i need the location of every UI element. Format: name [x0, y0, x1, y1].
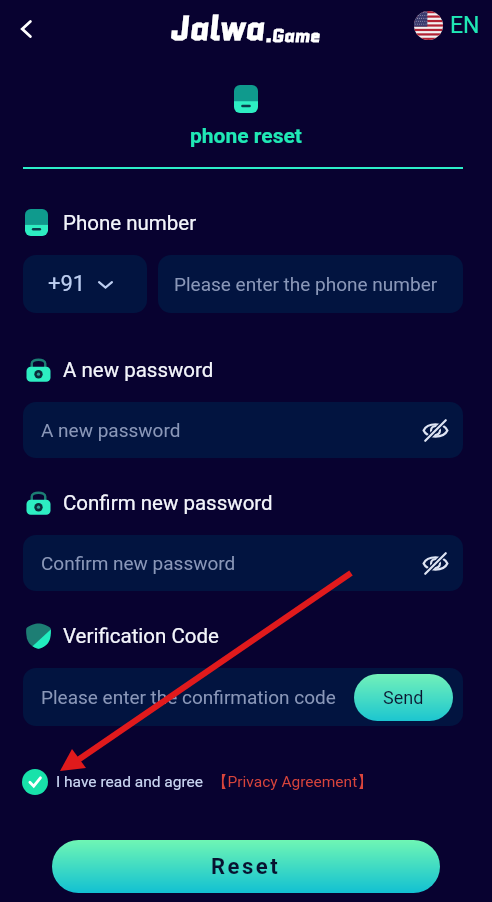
staticText: A new password — [41, 419, 181, 441]
button[interactable]: +91 — [23, 255, 147, 313]
staticText: Please enter the phone number — [174, 273, 438, 295]
staticText: Please enter the confirmation code — [41, 686, 336, 708]
staticText: EN — [450, 12, 480, 39]
staticText: Confirm new password — [63, 491, 273, 515]
staticText: Send — [383, 687, 424, 708]
staticText: Jalwa — [171, 5, 265, 52]
button[interactable]: A new password — [23, 402, 463, 458]
staticText: Phone number — [63, 211, 197, 235]
button[interactable]: Please enter the phone number — [158, 255, 463, 313]
button[interactable]: Toggle password visibility — [417, 412, 453, 448]
button[interactable]: Agree to privacy agreement — [22, 769, 48, 795]
button[interactable]: Back — [6, 9, 46, 49]
staticText: phone reset — [190, 124, 302, 149]
staticText: Reset — [211, 854, 281, 880]
button[interactable]: Please enter the confirmation code — [23, 668, 463, 726]
staticText: Confirm new password — [41, 552, 236, 574]
button[interactable]: Confirm new password — [23, 535, 463, 591]
staticText: Verification Code — [63, 624, 219, 648]
staticText: .Game — [265, 23, 321, 49]
staticText: A new password — [63, 358, 214, 382]
button[interactable]: 【Privacy Agreement】 — [212, 772, 373, 792]
button[interactable]: EN — [414, 11, 480, 40]
button[interactable]: Reset — [52, 840, 440, 893]
staticText: +91 — [48, 271, 86, 297]
button[interactable]: Toggle password visibility — [417, 545, 453, 581]
button[interactable]: Send — [354, 674, 453, 721]
staticText: I have read and agree — [56, 773, 203, 791]
